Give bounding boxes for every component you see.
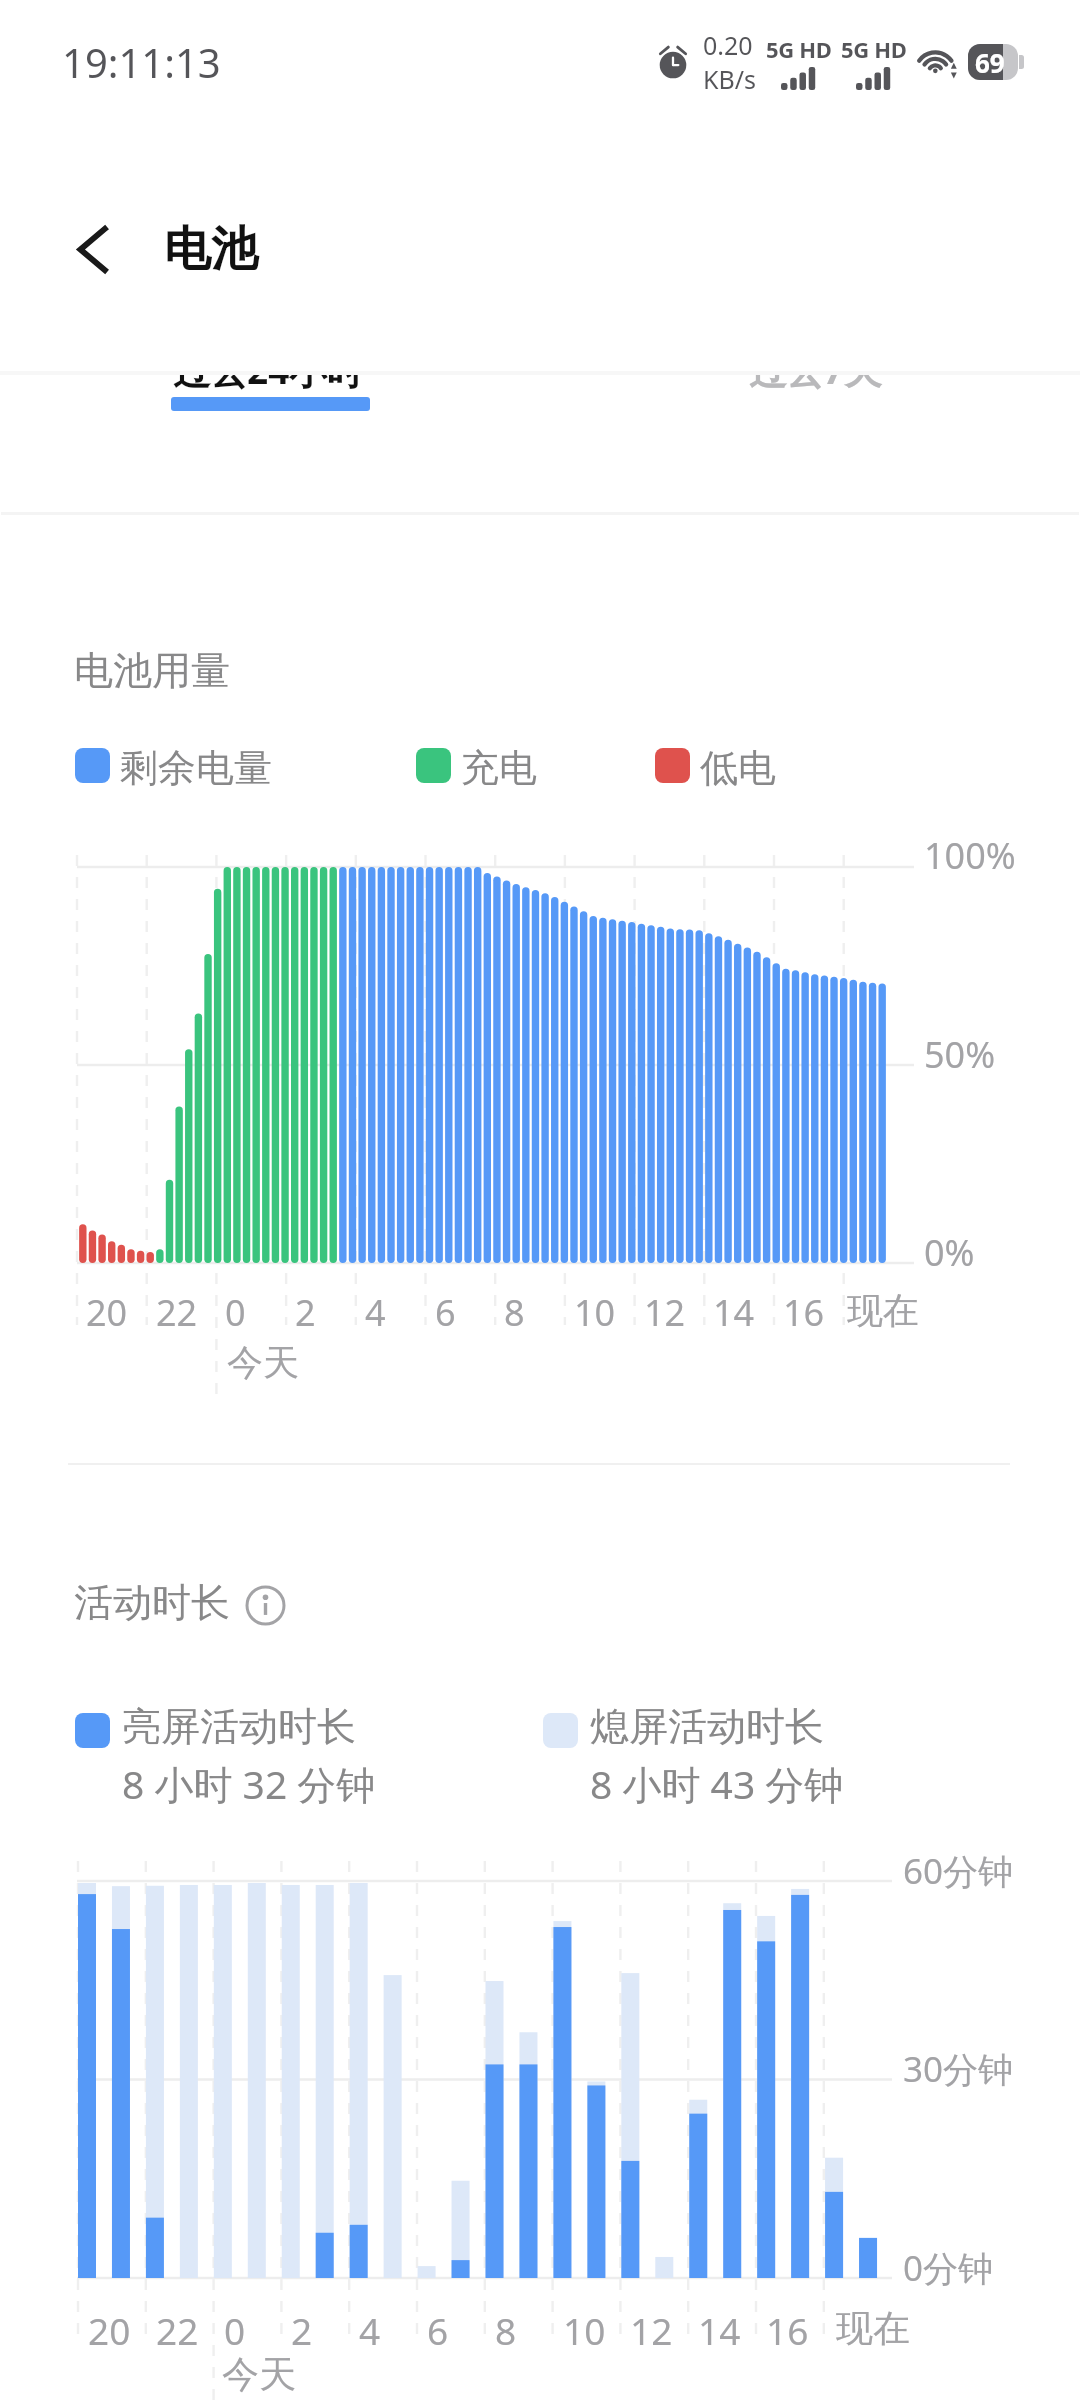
- staticText: 8 小时 32 分钟: [122, 1757, 376, 1810]
- staticText: 30分钟: [903, 2045, 1014, 2093]
- button[interactable]: Info: [245, 1585, 286, 1626]
- staticText: 0: [224, 2305, 246, 2355]
- staticText: 50%: [924, 1030, 996, 1079]
- staticText: 16: [783, 1288, 825, 1337]
- staticText: 14: [698, 2305, 741, 2355]
- staticText: 6: [435, 1288, 456, 1337]
- staticText: 19:11:13: [62, 35, 221, 89]
- staticText: KB/s: [703, 62, 757, 96]
- staticText: 现在: [836, 2305, 910, 2352]
- staticText: 亮屏活动时长: [122, 1702, 356, 1751]
- staticText: 5G HD: [766, 34, 832, 64]
- staticText: 10: [574, 1288, 616, 1337]
- staticText: 20: [88, 2305, 131, 2355]
- staticText: 过去24小时: [173, 344, 364, 395]
- staticText: 8 小时 43 分钟: [590, 1757, 844, 1810]
- staticText: 熄屏活动时长: [590, 1702, 824, 1751]
- staticText: 电池: [164, 220, 258, 279]
- staticText: 20: [86, 1288, 128, 1337]
- staticText: 0分钟: [903, 2244, 994, 2292]
- button[interactable]: Back: [52, 207, 136, 291]
- staticText: 22: [156, 2305, 199, 2355]
- staticText: 剩余电量: [120, 744, 272, 792]
- staticText: 低电: [700, 744, 776, 792]
- staticText: 6: [427, 2305, 449, 2355]
- staticText: 活动时长: [74, 1578, 230, 1627]
- staticText: 12: [630, 2305, 673, 2355]
- staticText: 今天: [222, 2351, 296, 2398]
- staticText: 充电: [461, 744, 537, 792]
- staticText: 60分钟: [903, 1847, 1014, 1895]
- staticText: 5G HD: [841, 34, 907, 64]
- button[interactable]: 过去24小时: [96, 374, 446, 422]
- staticText: 0: [225, 1288, 246, 1337]
- button[interactable]: 过去7天: [672, 374, 948, 422]
- staticText: 0.20: [703, 28, 753, 62]
- staticText: 电池用量: [74, 646, 230, 695]
- staticText: 16: [766, 2305, 809, 2355]
- staticText: 今天: [227, 1340, 299, 1385]
- staticText: 8: [504, 1288, 525, 1337]
- staticText: 2: [291, 2305, 313, 2355]
- staticText: 12: [644, 1288, 686, 1337]
- staticText: 4: [359, 2305, 381, 2355]
- staticText: 现在: [847, 1288, 919, 1333]
- staticText: 0%: [924, 1228, 975, 1277]
- staticText: 100%: [924, 831, 1016, 880]
- staticText: 14: [713, 1288, 755, 1337]
- staticText: 过去7天: [749, 344, 882, 395]
- staticText: 2: [295, 1288, 316, 1337]
- staticText: 22: [156, 1288, 198, 1337]
- staticText: 10: [563, 2305, 606, 2355]
- staticText: 8: [495, 2305, 517, 2355]
- staticText: 69: [975, 45, 1005, 80]
- staticText: 4: [365, 1288, 386, 1337]
